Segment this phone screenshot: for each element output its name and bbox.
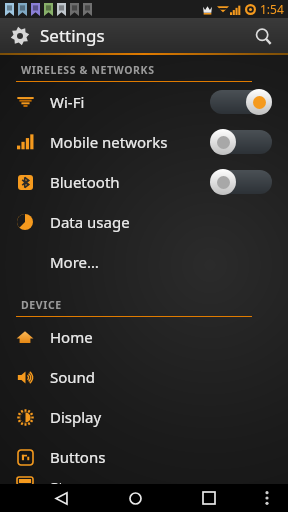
staticText: Data usage: [50, 212, 130, 232]
staticText: Buttons: [50, 447, 106, 467]
staticText: DEVICE: [21, 298, 62, 312]
button[interactable]: Off: [210, 169, 272, 195]
button[interactable]: Buttons: [0, 437, 288, 477]
button[interactable]: Data usage: [0, 202, 288, 242]
button[interactable]: Mobile networks: [0, 122, 288, 162]
staticText: Storage: [50, 477, 105, 485]
staticText: Bluetooth: [50, 172, 120, 192]
staticText: 1:54: [260, 1, 284, 17]
button[interactable]: Wi-Fi: [0, 82, 288, 122]
staticText: Settings: [40, 24, 105, 47]
button[interactable]: Storage: [0, 477, 288, 485]
staticText: Display: [50, 407, 102, 427]
button[interactable]: Search: [248, 21, 278, 51]
staticText: Home: [50, 327, 93, 347]
staticText: Mobile networks: [50, 132, 168, 152]
staticText: Sound: [50, 367, 96, 387]
button[interactable]: Off: [210, 129, 272, 155]
button[interactable]: Home: [120, 484, 150, 512]
staticText: More…: [50, 252, 99, 272]
button[interactable]: On: [210, 89, 272, 115]
button[interactable]: Home: [0, 317, 288, 357]
staticText: WIRELESS & NETWORKS: [21, 63, 155, 77]
button[interactable]: Sound: [0, 357, 288, 397]
button[interactable]: Display: [0, 397, 288, 437]
button[interactable]: More options: [254, 485, 280, 511]
button[interactable]: Recent apps: [194, 484, 224, 512]
staticText: Wi-Fi: [50, 92, 85, 112]
button[interactable]: More…: [0, 242, 288, 282]
button[interactable]: Bluetooth: [0, 162, 288, 202]
button[interactable]: Back: [46, 484, 76, 512]
